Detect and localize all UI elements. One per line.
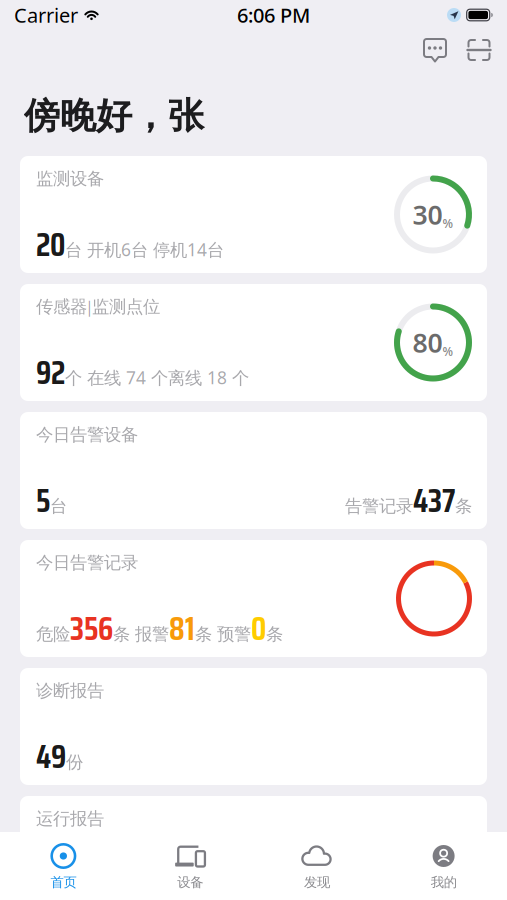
- staticText: 6:06 PM: [237, 2, 310, 28]
- staticText: 告警记录: [345, 495, 413, 517]
- staticText: 30: [412, 197, 442, 232]
- staticText: 0: [251, 604, 266, 654]
- button[interactable]: 发现: [253, 832, 380, 900]
- staticText: 监测点位: [92, 296, 160, 317]
- staticText: 5: [36, 476, 50, 526]
- staticText: 356: [70, 604, 113, 654]
- button[interactable]: 设备: [127, 832, 254, 900]
- staticText: 437: [413, 476, 455, 526]
- button[interactable]: 首页: [0, 832, 127, 900]
- staticText: Carrier: [14, 2, 78, 28]
- staticText: 81: [169, 604, 195, 654]
- staticText: 个 在线 74 个离线 18 个: [65, 366, 249, 389]
- button[interactable]: 我的: [380, 832, 507, 900]
- button[interactable]: 消息: [417, 32, 453, 68]
- staticText: 危险: [36, 623, 70, 645]
- staticText: 诊断报告: [36, 680, 104, 701]
- staticText: 监测设备: [36, 168, 104, 189]
- staticText: 台 开机6台 停机14台: [65, 238, 224, 261]
- staticText: 台: [50, 495, 67, 517]
- staticText: |: [85, 296, 94, 317]
- staticText: %: [442, 215, 453, 231]
- staticText: 条: [455, 495, 472, 517]
- button[interactable]: 扫一扫: [461, 32, 497, 68]
- staticText: 设备: [177, 874, 203, 890]
- staticText: 今日告警设备: [36, 424, 138, 445]
- staticText: 条 预警: [195, 623, 251, 645]
- staticText: 运行报告: [36, 808, 104, 829]
- staticText: %: [442, 343, 453, 359]
- staticText: 条 报警: [113, 623, 169, 645]
- staticText: 92: [36, 348, 65, 398]
- staticText: 80: [412, 325, 442, 360]
- staticText: 傍晚好，张: [24, 94, 204, 138]
- staticText: 我的: [431, 874, 457, 890]
- staticText: 传感器: [36, 296, 87, 317]
- staticText: 发现: [304, 874, 330, 890]
- staticText: 首页: [50, 874, 76, 890]
- staticText: 今日告警记录: [36, 552, 138, 573]
- staticText: 份: [66, 751, 83, 773]
- staticText: 20: [36, 220, 65, 270]
- staticText: 49: [36, 732, 66, 782]
- staticText: 条: [266, 623, 283, 645]
